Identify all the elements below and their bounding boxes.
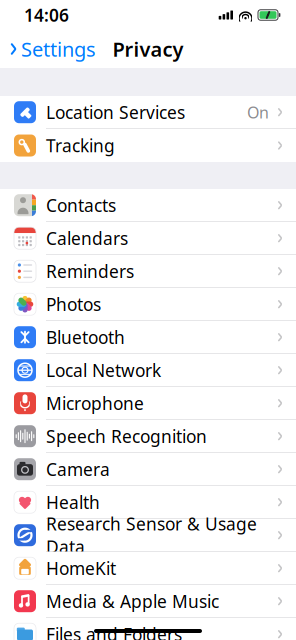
button[interactable]: Speech Recognition (0, 420, 296, 453)
staticText: 14:06 (24, 3, 69, 26)
staticText: HomeKit (46, 557, 116, 580)
button[interactable]: Microphone (0, 387, 296, 420)
staticText: Health (46, 491, 100, 514)
staticText: Files and Folders (46, 623, 182, 640)
staticText: Location Services (46, 101, 185, 124)
staticText: Camera (46, 458, 110, 481)
staticText: Calendars (46, 227, 128, 250)
button[interactable]: Calendars (0, 222, 296, 255)
staticText: Speech Recognition (46, 425, 207, 448)
staticText: Photos (46, 293, 101, 316)
button[interactable]: Research Sensor & Usage Data (0, 519, 296, 552)
button[interactable]: Local Network (0, 354, 296, 387)
button[interactable]: Health (0, 486, 296, 519)
staticText: Contacts (46, 194, 116, 217)
staticText: Reminders (46, 260, 134, 283)
staticText: Settings (21, 36, 96, 62)
staticText: Research Sensor & Usage Data (46, 512, 257, 558)
staticText: Privacy (112, 36, 183, 62)
button[interactable]: Tracking (0, 129, 296, 162)
button[interactable]: Camera (0, 453, 296, 486)
button[interactable]: Photos (0, 288, 296, 321)
staticText: Local Network (46, 359, 161, 382)
staticText: Tracking (46, 134, 115, 157)
button[interactable]: Files and Folders (0, 618, 296, 640)
button[interactable]: Bluetooth (0, 321, 296, 354)
button[interactable]: Reminders (0, 255, 296, 288)
button[interactable]: Settings (0, 30, 96, 68)
button[interactable]: Media & Apple Music (0, 585, 296, 618)
button[interactable]: Contacts (0, 189, 296, 222)
staticText: Media & Apple Music (46, 590, 219, 613)
staticText: On (247, 102, 269, 123)
button[interactable]: Location Services (0, 96, 296, 129)
button[interactable]: HomeKit (0, 552, 296, 585)
staticText: Microphone (46, 392, 144, 415)
staticText: Bluetooth (46, 326, 125, 349)
